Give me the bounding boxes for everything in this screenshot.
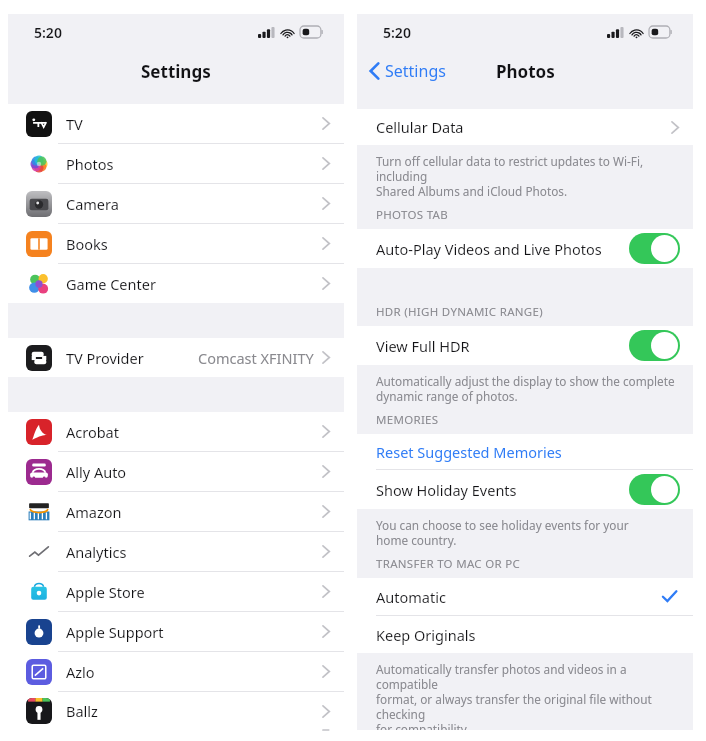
staticText: Automatically adjust the display to show… [376, 373, 675, 404]
button[interactable]: Apple Support [8, 612, 344, 651]
staticText: Azlo [66, 662, 95, 682]
staticText: Apple Support [66, 622, 164, 642]
button[interactable]: Apple Store [8, 572, 344, 611]
staticText: TV Provider [66, 348, 144, 368]
staticText: Amazon [66, 502, 122, 522]
staticText: TV [66, 114, 83, 134]
button[interactable]: View Full HDR [357, 326, 693, 365]
staticText: You can choose to see holiday events for… [376, 517, 629, 548]
staticText: Settings [385, 60, 446, 82]
staticText: Apple Store [66, 582, 145, 602]
staticText: Game Center [66, 274, 156, 294]
staticText: 5:20 [383, 23, 411, 42]
button[interactable]: Show Holiday Events [357, 470, 693, 509]
button[interactable]: TV [8, 104, 344, 143]
button[interactable]: TV Provider [8, 338, 344, 377]
staticText: Keep Originals [376, 625, 476, 645]
staticText: HDR (HIGH DYNAMIC RANGE) [376, 304, 543, 320]
staticText: Turn off cellular data to restrict updat… [376, 153, 677, 199]
button[interactable]: Azlo [8, 652, 344, 691]
button[interactable]: Camera [8, 184, 344, 223]
staticText: Ally Auto [66, 462, 127, 482]
staticText: TRANSFER TO MAC OR PC [376, 556, 521, 572]
button[interactable]: Analytics [8, 532, 344, 571]
staticText: PHOTOS TAB [376, 207, 448, 223]
button[interactable]: Automatic [357, 578, 693, 615]
button[interactable]: Books [8, 224, 344, 263]
button[interactable]: Photos [8, 144, 344, 183]
staticText: 5:20 [34, 23, 62, 42]
staticText: Photos [66, 154, 114, 174]
staticText: Cellular Data [376, 117, 464, 137]
staticText: Auto-Play Videos and Live Photos [376, 239, 602, 259]
button[interactable]: Keep Originals [357, 616, 693, 653]
staticText: Ballz [66, 701, 98, 721]
button[interactable]: Ally Auto [8, 452, 344, 491]
button[interactable]: Acrobat [8, 412, 344, 451]
staticText: Automatic [376, 587, 446, 607]
button[interactable]: Cellular Data [357, 109, 693, 145]
button[interactable]: Ballz [8, 692, 344, 730]
button[interactable]: Auto-Play Videos and Live Photos [357, 229, 693, 268]
staticText: Acrobat [66, 422, 119, 442]
staticText: MEMORIES [376, 412, 439, 428]
button[interactable]: Game Center [8, 264, 344, 303]
staticText: Camera [66, 194, 119, 214]
staticText: Comcast XFINITY [198, 348, 314, 368]
button[interactable]: Reset Suggested Memories [357, 434, 693, 469]
staticText: Reset Suggested Memories [376, 442, 562, 462]
staticText: View Full HDR [376, 336, 470, 356]
staticText: Settings [141, 60, 211, 83]
button[interactable]: Toggle on [629, 330, 680, 361]
button[interactable]: Amazon [8, 492, 344, 531]
staticText: Analytics [66, 542, 127, 562]
staticText: Show Holiday Events [376, 480, 517, 500]
staticText: Automatically transfer photos and videos… [376, 661, 677, 730]
staticText: Books [66, 234, 108, 254]
staticText: Photos [496, 60, 555, 83]
button[interactable]: Toggle on [629, 474, 680, 505]
button[interactable]: Settings [369, 60, 446, 82]
button[interactable]: Toggle on [629, 233, 680, 264]
